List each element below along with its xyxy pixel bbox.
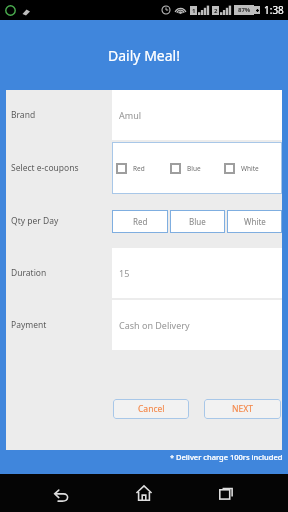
staticText: Qty per Day <box>11 215 59 227</box>
staticText: White <box>241 164 259 173</box>
button[interactable]: Blue <box>170 163 224 174</box>
button[interactable]: Red <box>112 210 168 233</box>
staticText: Cancel <box>138 403 165 415</box>
staticText: 15 <box>119 267 130 279</box>
button[interactable]: NEXT <box>204 399 281 419</box>
button[interactable]: Amul <box>112 90 282 140</box>
staticText: Select e-coupons <box>11 162 79 174</box>
staticText: * Deliver charge 100rs included <box>170 452 283 462</box>
button[interactable]: Cash on Delivery <box>112 300 282 350</box>
staticText: Payment <box>11 319 47 331</box>
staticText: Amul <box>119 109 142 121</box>
staticText: NEXT <box>232 403 253 415</box>
button[interactable]: Recent apps <box>205 474 249 512</box>
button[interactable]: 15 <box>112 248 282 298</box>
staticText: 87% <box>238 6 251 14</box>
staticText: Duration <box>11 267 47 279</box>
staticText: White <box>244 216 266 227</box>
button[interactable]: Back <box>39 474 83 512</box>
staticText: 1:38 <box>264 3 284 17</box>
staticText: Red <box>133 164 145 173</box>
button[interactable]: White <box>227 210 282 233</box>
staticText: 2 <box>214 7 218 15</box>
staticText: Blue <box>189 216 206 227</box>
staticText: Brand <box>11 109 36 121</box>
button[interactable]: White <box>224 163 278 174</box>
staticText: Daily Meal! <box>108 46 180 65</box>
staticText: Red <box>133 216 148 227</box>
button[interactable]: Home <box>122 474 166 512</box>
button[interactable]: Blue <box>170 210 225 233</box>
button[interactable]: Red <box>116 163 170 174</box>
staticText: 1 <box>192 7 196 15</box>
button[interactable]: Cancel <box>113 399 189 419</box>
staticText: Blue <box>187 164 201 173</box>
staticText: Cash on Delivery <box>119 319 190 331</box>
